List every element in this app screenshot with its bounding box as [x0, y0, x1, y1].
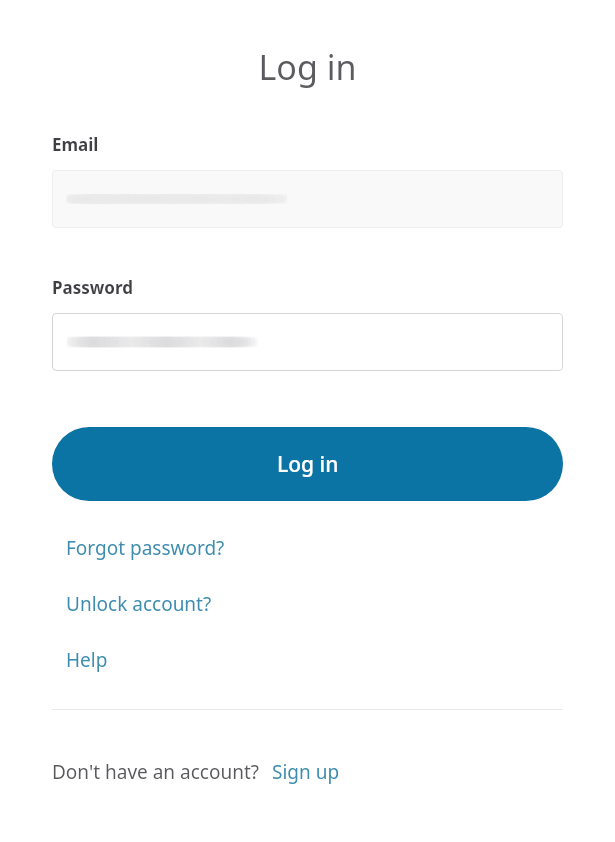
- button[interactable]: Sign up: [272, 759, 340, 785]
- staticText: Password: [52, 276, 133, 299]
- staticText: Log in: [0, 44, 615, 90]
- button[interactable]: Log in: [52, 427, 563, 501]
- staticText: Forgot password?: [66, 535, 225, 561]
- button[interactable]: Forgot password?: [66, 535, 225, 561]
- button[interactable]: Help: [66, 647, 108, 673]
- staticText: Help: [66, 647, 108, 673]
- button[interactable]: [52, 313, 563, 371]
- button[interactable]: Unlock account?: [66, 591, 212, 617]
- staticText: Don't have an account?: [52, 759, 260, 785]
- staticText: Unlock account?: [66, 591, 212, 617]
- button[interactable]: [52, 170, 563, 228]
- staticText: Sign up: [272, 759, 340, 785]
- staticText: Log in: [277, 450, 339, 479]
- staticText: Email: [52, 133, 99, 156]
